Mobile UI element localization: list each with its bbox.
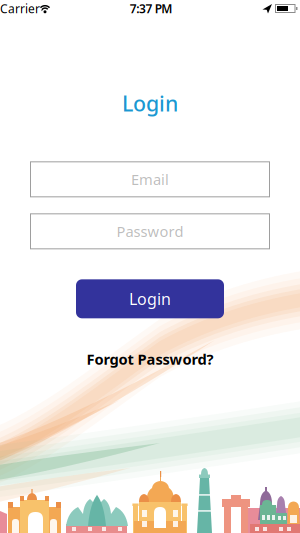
staticText: Forgot Password?: [86, 349, 213, 369]
staticText: 7:37 PM: [130, 0, 172, 16]
button[interactable]: Email: [30, 161, 270, 197]
staticText: Login: [129, 288, 171, 309]
button[interactable]: Password: [30, 213, 270, 249]
staticText: Carrier: [0, 0, 40, 16]
staticText: Email: [131, 170, 169, 189]
button[interactable]: Login: [76, 279, 224, 318]
staticText: Login: [122, 89, 178, 117]
button[interactable]: Forgot Password?: [86, 349, 213, 369]
staticText: Password: [116, 222, 183, 241]
